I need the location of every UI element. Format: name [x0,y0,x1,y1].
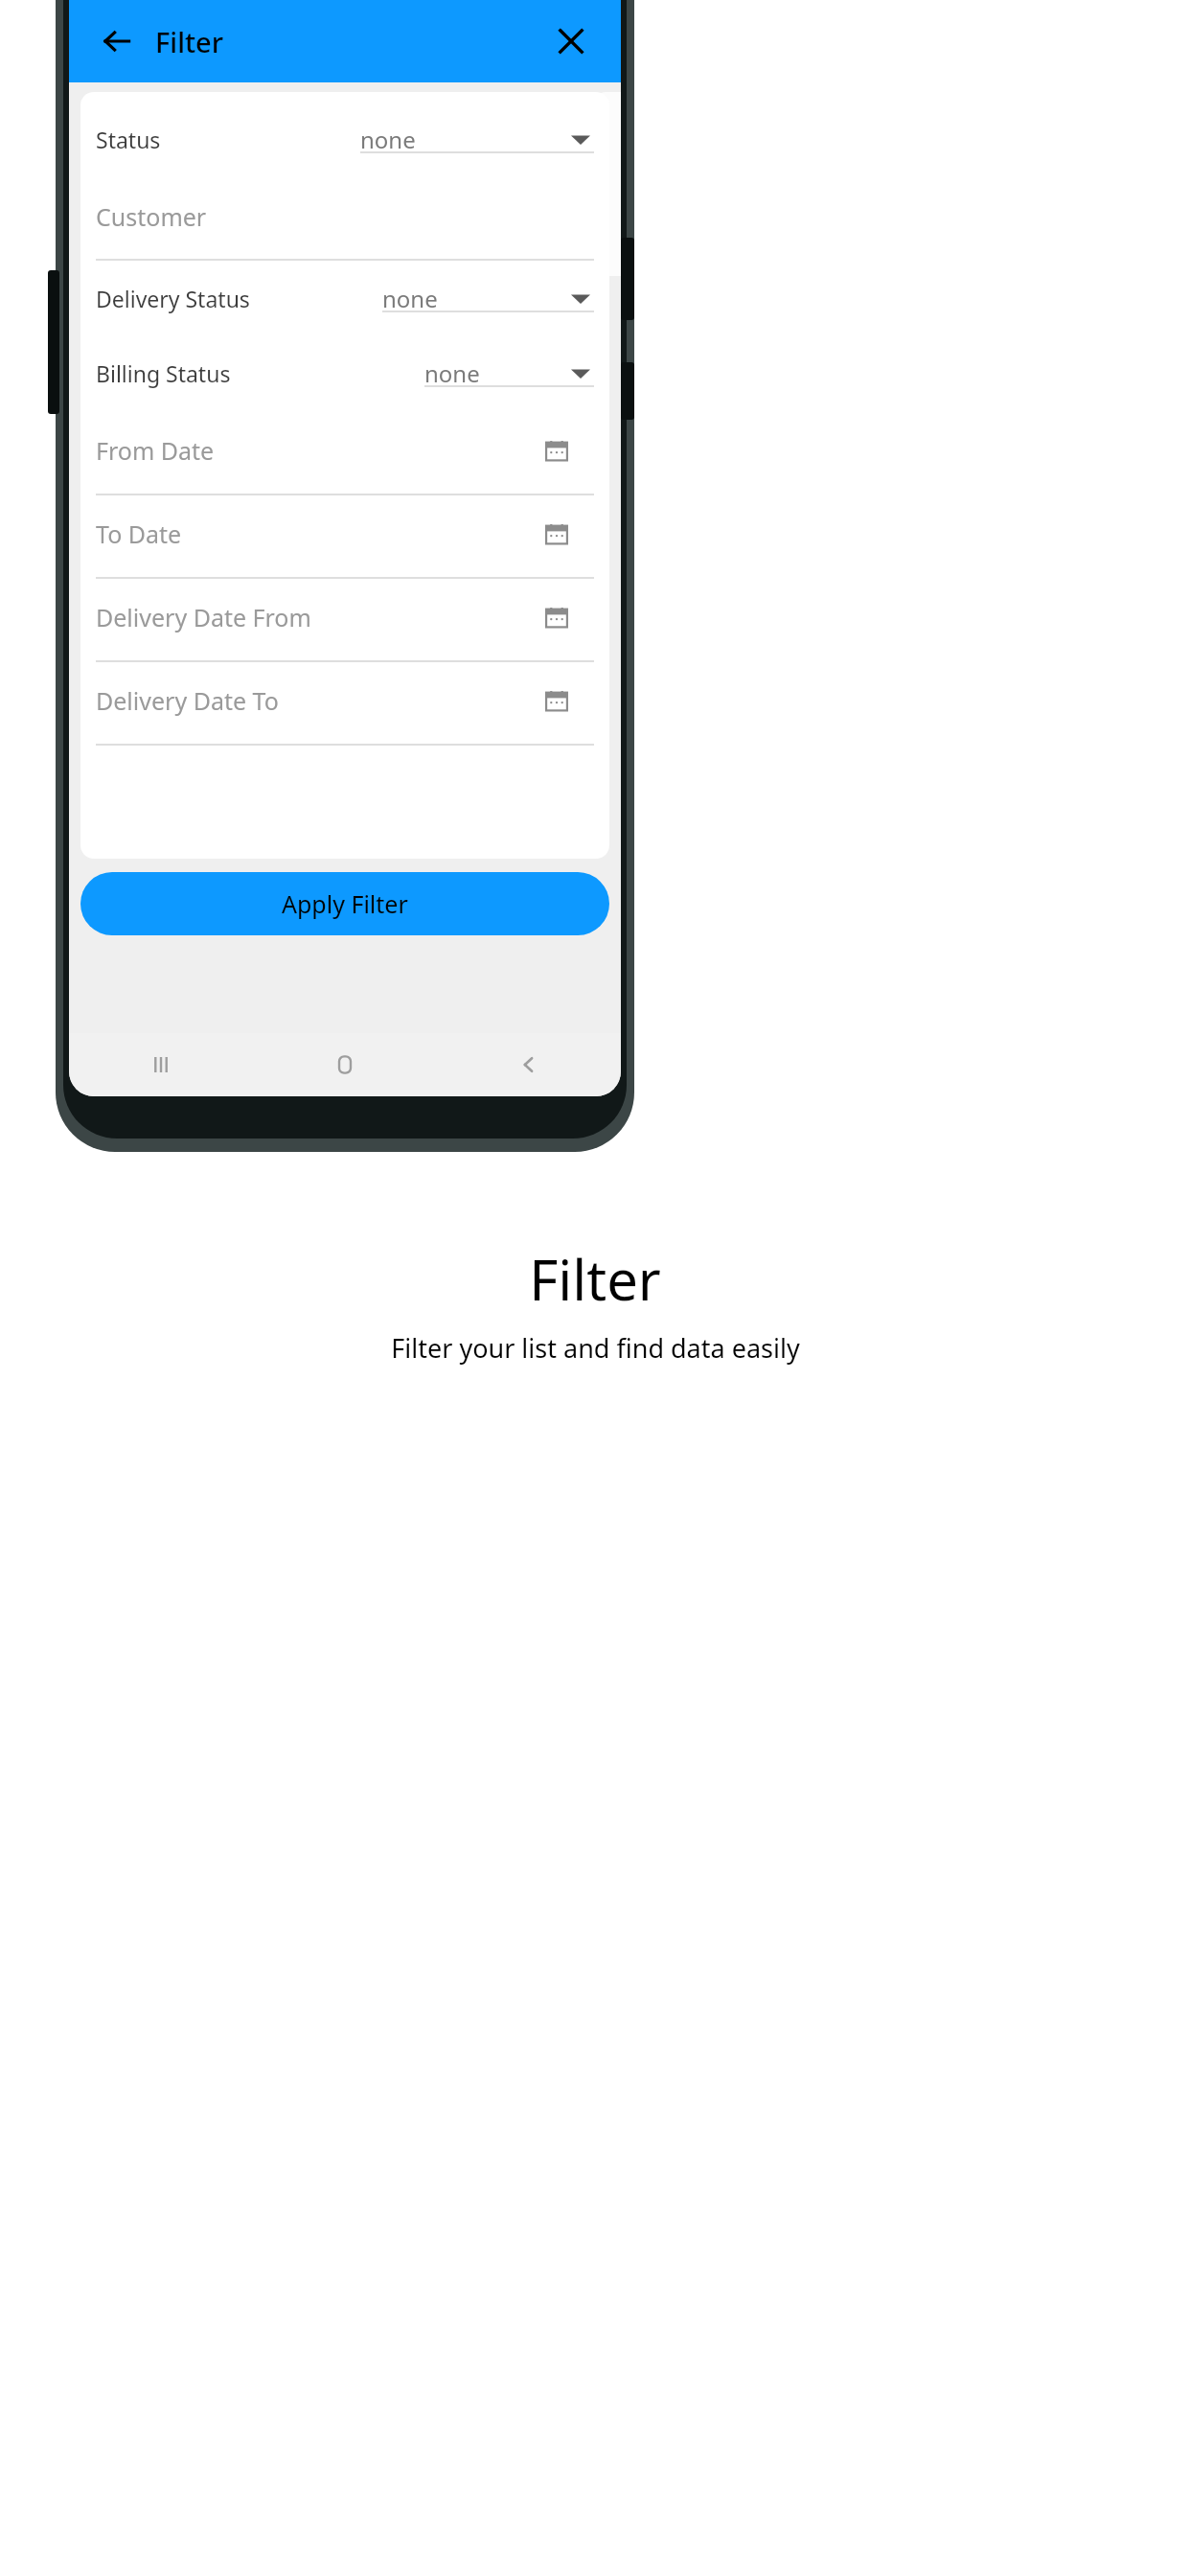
staticText: none [424,357,480,389]
button[interactable]: Status [96,109,594,184]
staticText: Delivery Date From [96,601,311,633]
staticText: Customer [96,200,207,233]
button[interactable]: Close [546,16,596,66]
staticText: Filter [529,1241,661,1317]
button[interactable]: Recents [69,1033,253,1096]
button[interactable]: Delivery Date To [96,668,594,751]
button[interactable]: Home [253,1033,437,1096]
button[interactable]: Delivery Date From [96,585,594,668]
staticText: Delivery Status [96,284,250,313]
staticText: Filter your list and find data easily [391,1330,800,1366]
staticText: Filter [155,23,223,60]
staticText: Delivery Date To [96,684,279,717]
staticText: none [382,283,438,314]
button[interactable]: Back [437,1033,621,1096]
staticText: Apply Filter [282,887,408,920]
button[interactable]: Delivery Status [96,268,594,343]
button[interactable]: Back [92,16,142,66]
staticText: none [360,124,416,155]
staticText: Billing Status [96,358,231,388]
button[interactable]: Apply Filter [80,872,609,935]
button[interactable]: From Date [96,418,594,501]
button[interactable]: To Date [96,501,594,585]
staticText: Status [96,125,161,154]
staticText: From Date [96,434,215,467]
button[interactable]: Billing Status [96,343,594,418]
button[interactable]: Customer [96,184,594,268]
staticText: To Date [96,517,182,550]
